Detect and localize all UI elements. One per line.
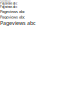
staticText: Pageviews abc <box>0 19 36 27</box>
staticText: Pageviews abc <box>0 0 11 2</box>
staticText: Pageviews abc <box>0 5 17 9</box>
staticText: Pageviews abc <box>0 14 25 19</box>
staticText: Pageviews abc <box>0 9 25 14</box>
staticText: Pageviews abc <box>0 2 17 5</box>
